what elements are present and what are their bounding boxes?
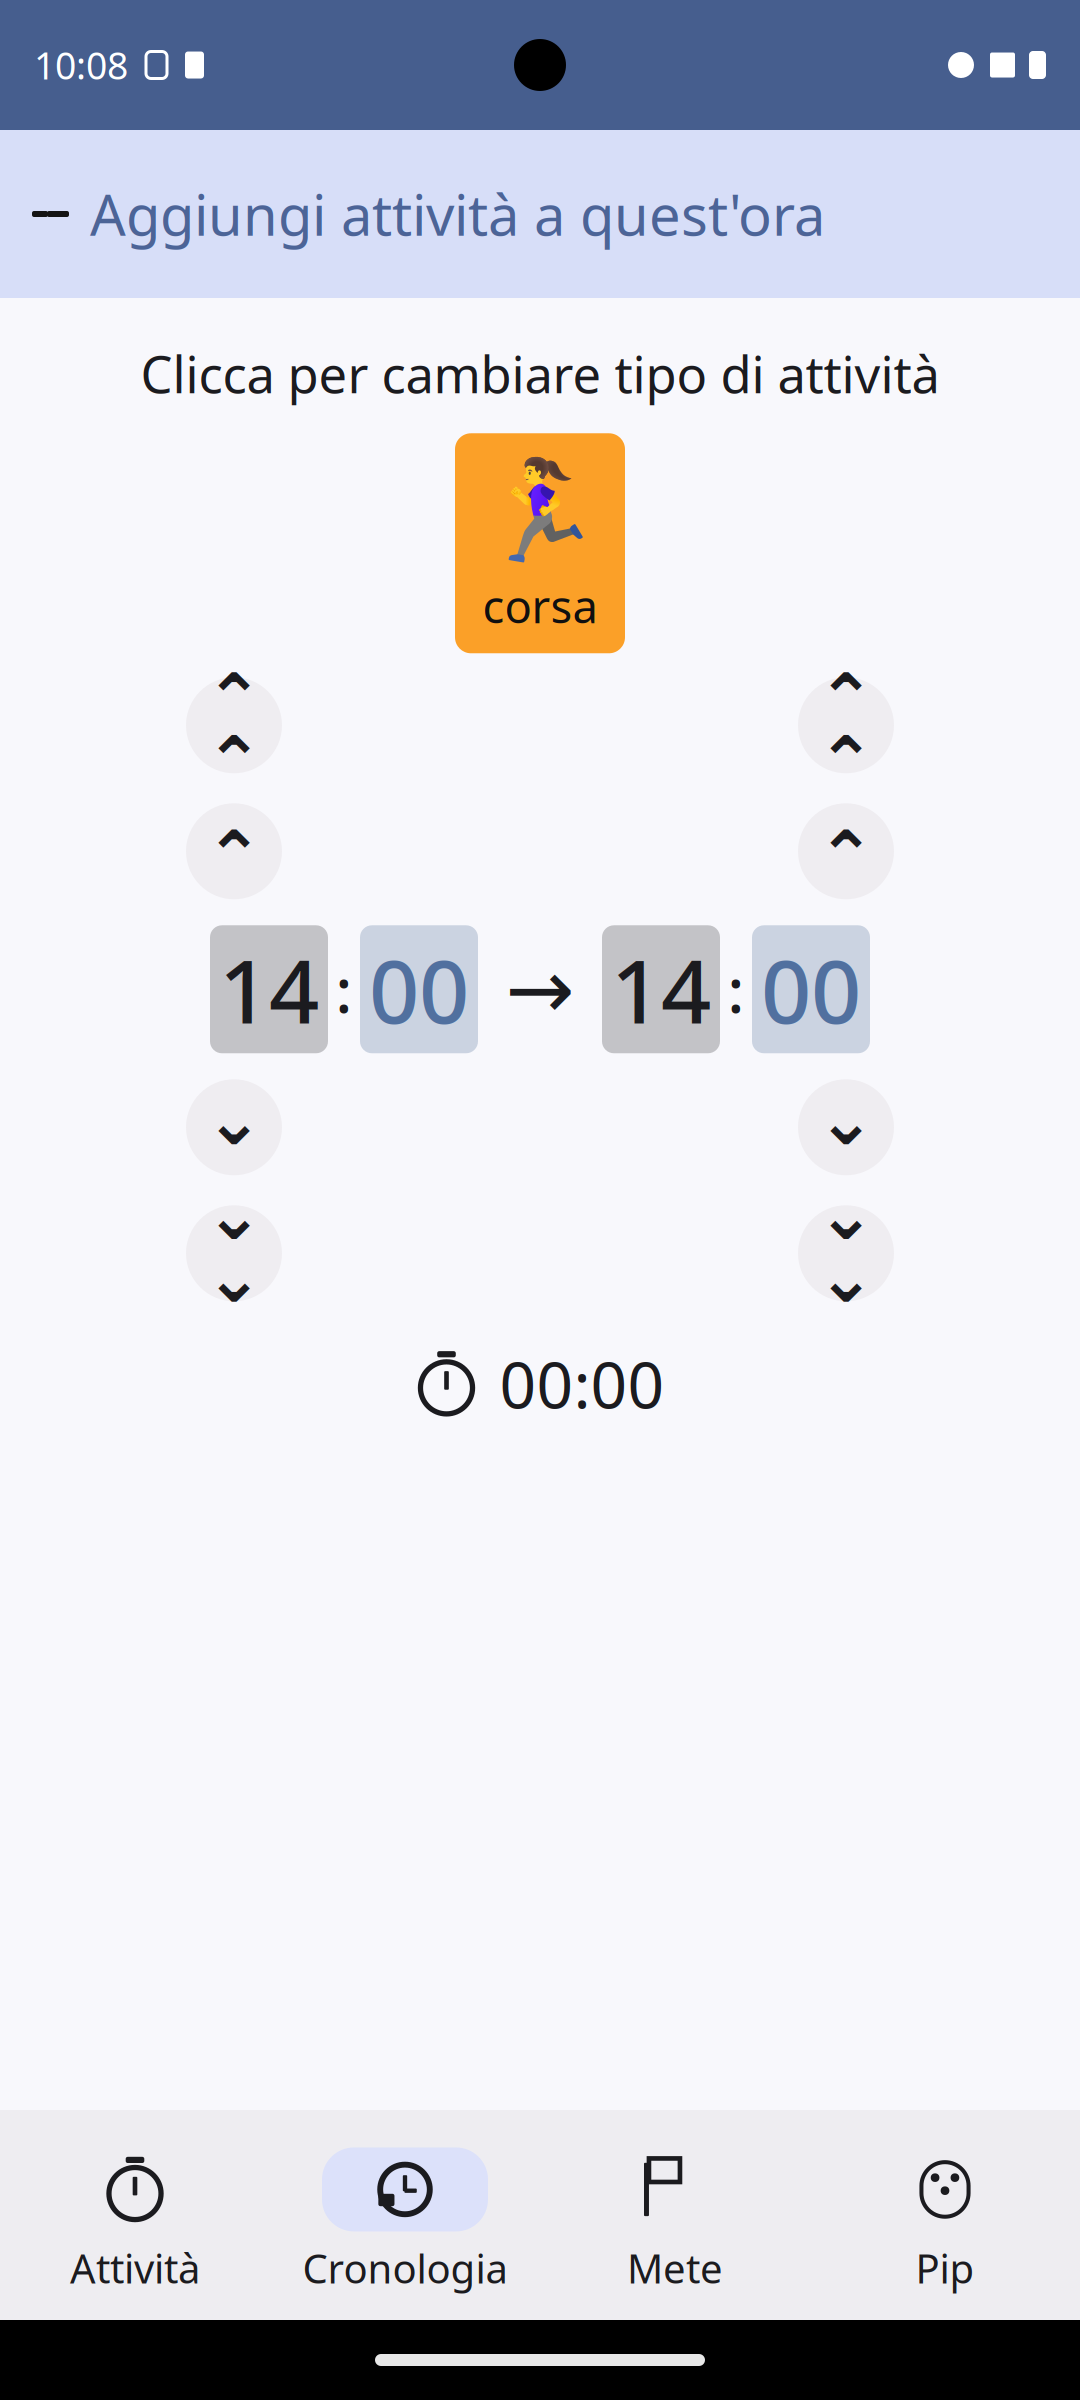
- staticText: ⌄: [817, 1081, 875, 1160]
- staticText: Clicca per cambiare tipo di attività: [140, 340, 939, 407]
- button[interactable]: Mete: [540, 2139, 810, 2302]
- staticText: 00:00: [499, 1341, 664, 1426]
- button[interactable]: 00: [752, 925, 870, 1053]
- staticText: 10:08: [34, 40, 128, 90]
- button[interactable]: 14: [210, 925, 328, 1053]
- staticText: Aggiungi attività a quest'ora: [90, 177, 825, 251]
- button[interactable]: 14: [602, 925, 720, 1053]
- staticText: ⌄: [205, 1238, 263, 1317]
- button[interactable]: Cronologia: [270, 2139, 540, 2302]
- button[interactable]: Ora inizio -: [186, 1079, 282, 1175]
- staticText: Cronologia: [302, 2241, 507, 2294]
- button[interactable]: Indietro: [24, 182, 78, 246]
- staticText: ⌃: [205, 817, 263, 896]
- staticText: :: [335, 949, 352, 1030]
- staticText: ⌄: [817, 1176, 875, 1254]
- staticText: ⌃: [205, 660, 263, 738]
- button[interactable]: Ora inizio +: [186, 803, 282, 899]
- staticText: corsa: [482, 576, 597, 636]
- staticText: 00: [369, 931, 469, 1048]
- staticText: ⌃: [205, 722, 263, 801]
- button[interactable]: Pip: [810, 2139, 1080, 2302]
- button[interactable]: 00: [360, 925, 478, 1053]
- staticText: 14: [611, 931, 711, 1048]
- staticText: ⌄: [205, 1176, 263, 1254]
- staticText: 14: [219, 931, 319, 1048]
- staticText: 🏃‍♀️: [478, 455, 601, 567]
- staticText: Mete: [627, 2241, 723, 2294]
- staticText: ⌄: [205, 1081, 263, 1160]
- staticText: Attività: [70, 2241, 200, 2294]
- button[interactable]: Ora fine +: [798, 803, 894, 899]
- button[interactable]: 🏃‍♀️: [455, 433, 625, 653]
- staticText: ⌃: [817, 660, 875, 738]
- staticText: ⌄: [817, 1238, 875, 1317]
- button[interactable]: Ora fine -1h: [798, 1205, 894, 1301]
- staticText: ⌃: [817, 722, 875, 801]
- staticText: Pip: [915, 2241, 974, 2294]
- button[interactable]: Ora inizio +1h: [186, 677, 282, 773]
- button[interactable]: Ora fine +1h: [798, 677, 894, 773]
- staticText: ⌃: [817, 817, 875, 896]
- staticText: :: [727, 949, 744, 1030]
- button[interactable]: Attività: [0, 2139, 270, 2302]
- button[interactable]: Ora inizio -1h: [186, 1205, 282, 1301]
- staticText: 00: [761, 931, 861, 1048]
- button[interactable]: Ora fine -: [798, 1079, 894, 1175]
- staticText: →: [505, 942, 574, 1036]
